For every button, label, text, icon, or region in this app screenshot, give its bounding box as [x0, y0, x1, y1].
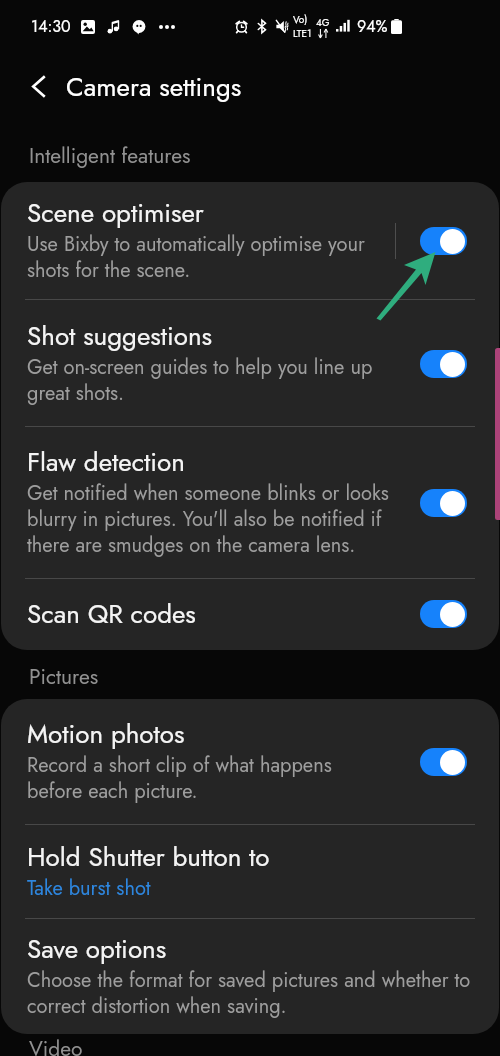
staticText: Use Bixby to automatically optimise your…: [27, 230, 365, 285]
staticText: Get on-screen guides to help you line up…: [27, 353, 373, 408]
staticText: Flaw detection: [27, 443, 185, 481]
button[interactable]: Toggle on: [420, 350, 467, 378]
staticText: Hold Shutter button to: [27, 838, 270, 876]
staticText: Scene optimiser: [27, 194, 204, 232]
button[interactable]: Scene optimiser: [1, 182, 499, 299]
staticText: Intelligent features: [29, 141, 191, 171]
staticText: Camera settings: [66, 68, 242, 106]
staticText: Get notified when someone blinks or look…: [27, 479, 389, 560]
button[interactable]: Shot suggestions: [1, 300, 499, 426]
staticText: 4G: [316, 15, 330, 29]
staticText: Vo): [293, 12, 308, 26]
button[interactable]: Toggle on: [420, 227, 467, 255]
staticText: Pictures: [29, 662, 99, 692]
button[interactable]: Motion photos: [1, 699, 499, 824]
staticText: LTE1: [293, 26, 312, 40]
staticText: Video: [29, 1034, 83, 1056]
button[interactable]: Navigate up: [17, 62, 59, 110]
button[interactable]: Save options: [1, 919, 499, 1034]
staticText: Shot suggestions: [27, 317, 213, 355]
staticText: Save options: [27, 930, 167, 968]
staticText: Record a short clip of what happens befo…: [27, 751, 332, 806]
button[interactable]: Toggle on: [420, 489, 467, 517]
staticText: 14:30: [31, 15, 71, 38]
staticText: Choose the format for saved pictures and…: [27, 966, 471, 1021]
button[interactable]: Toggle on: [420, 748, 467, 776]
staticText: Take burst shot: [27, 874, 151, 903]
staticText: 94%: [357, 15, 388, 38]
staticText: Scan QR codes: [27, 595, 196, 633]
button[interactable]: Hold Shutter button to: [1, 825, 499, 918]
button[interactable]: Scan QR codes: [1, 579, 499, 650]
button[interactable]: Toggle on: [420, 600, 467, 628]
button[interactable]: Flaw detection: [1, 427, 499, 578]
staticText: Motion photos: [27, 715, 185, 753]
